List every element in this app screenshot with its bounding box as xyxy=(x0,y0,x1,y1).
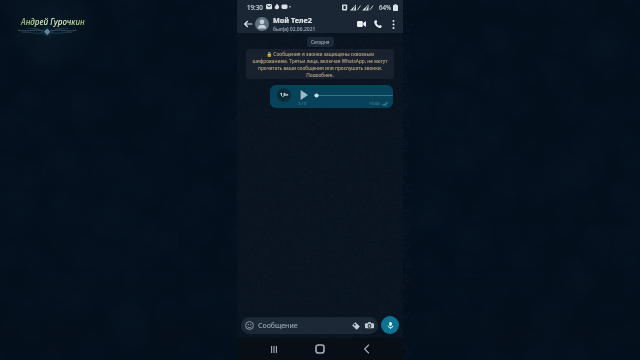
button[interactable]: Back xyxy=(357,340,375,358)
staticText: Сообщение xyxy=(258,321,298,331)
button[interactable]: Profile photo xyxy=(255,17,269,31)
staticText: 🔒 Сообщения и звонки защищены сквозным ш… xyxy=(248,51,392,77)
button[interactable]: Сообщение xyxy=(241,317,378,334)
button[interactable]: 🔒 Сообщения и звонки защищены сквозным ш… xyxy=(246,49,394,79)
staticText: был(а) 02.06.2021 xyxy=(273,26,316,33)
button[interactable]: Video call xyxy=(354,17,368,31)
button[interactable]: Record voice message xyxy=(381,316,399,334)
staticText: Сегодня xyxy=(311,39,330,45)
button[interactable]: Home xyxy=(311,340,329,358)
button[interactable]: Сегодня xyxy=(307,37,334,47)
staticText: 3:10 xyxy=(298,101,307,107)
staticText: 1,5× xyxy=(280,92,289,98)
button[interactable]: Back xyxy=(241,17,254,30)
button[interactable]: Voice call xyxy=(371,17,385,31)
staticText: 15:04 xyxy=(369,101,380,107)
button[interactable]: More options xyxy=(387,18,399,30)
staticText: Андрей Гурочкин xyxy=(21,16,85,27)
staticText: Мой Теле2 xyxy=(273,15,312,25)
button[interactable]: 1,5× xyxy=(270,85,393,108)
button[interactable]: Recent apps xyxy=(265,340,283,358)
staticText: 64% xyxy=(379,3,392,11)
staticText: 19:30 xyxy=(247,3,263,11)
